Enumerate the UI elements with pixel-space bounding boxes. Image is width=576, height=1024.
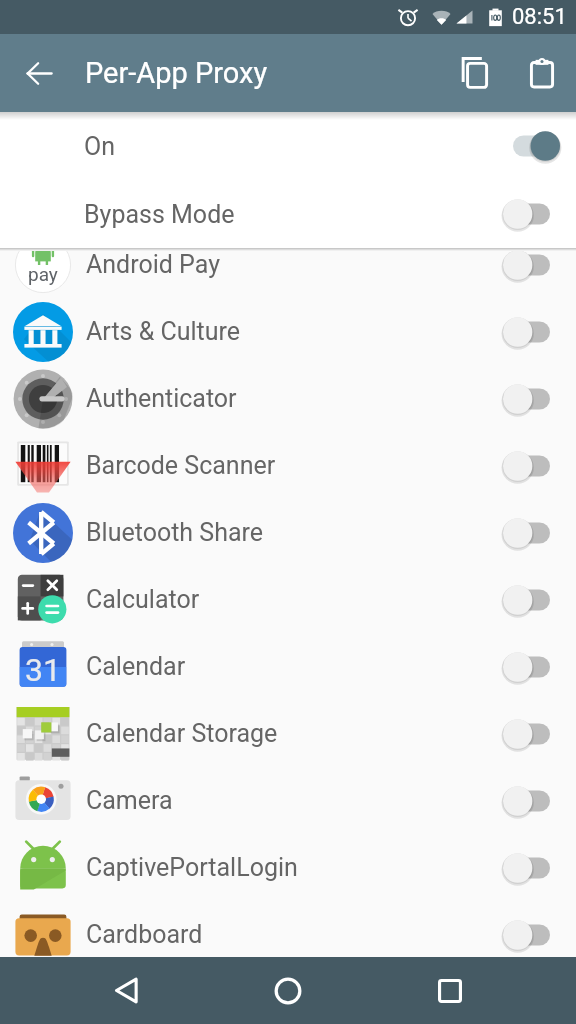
button[interactable]: Recents (414, 957, 486, 1024)
button[interactable]: CaptivePortalLogin (0, 834, 576, 901)
button[interactable]: Cardboard (0, 901, 576, 957)
staticText: Authenticator (86, 384, 237, 413)
button[interactable]: Back (90, 957, 162, 1024)
button[interactable]: Calculator (0, 566, 576, 633)
staticText: CaptivePortalLogin (86, 853, 298, 882)
button[interactable]: On (0, 112, 576, 180)
staticText: 31 (25, 651, 61, 689)
staticText: pay (28, 263, 58, 285)
staticText: Bypass Mode (84, 200, 235, 229)
staticText: Calculator (86, 585, 200, 614)
staticText: Calendar (86, 652, 186, 681)
staticText: Per-App Proxy (85, 56, 268, 90)
button[interactable]: Barcode Scanner (0, 432, 576, 499)
button[interactable]: 31 (0, 633, 576, 700)
button[interactable]: Camera (0, 767, 576, 834)
staticText: Arts & Culture (86, 317, 241, 346)
button[interactable]: Arts & Culture (0, 298, 576, 365)
staticText: Barcode Scanner (86, 451, 276, 480)
staticText: Camera (86, 786, 173, 815)
staticText: On (84, 132, 116, 161)
staticText: Calendar Storage (86, 719, 278, 748)
staticText: Bluetooth Share (86, 518, 264, 547)
staticText: Android Pay (86, 251, 220, 279)
button[interactable]: Bypass Mode (0, 180, 576, 248)
button[interactable]: Calendar Storage (0, 700, 576, 767)
button[interactable]: Authenticator (0, 365, 576, 432)
button[interactable]: Bluetooth Share (0, 499, 576, 566)
button[interactable]: Paste (514, 45, 570, 101)
button[interactable]: Copy (446, 45, 502, 101)
button[interactable]: Home (252, 957, 324, 1024)
staticText: 08:51 (512, 4, 567, 30)
staticText: Cardboard (86, 920, 203, 949)
button[interactable]: pay (0, 251, 576, 298)
button[interactable]: Back (14, 48, 64, 98)
